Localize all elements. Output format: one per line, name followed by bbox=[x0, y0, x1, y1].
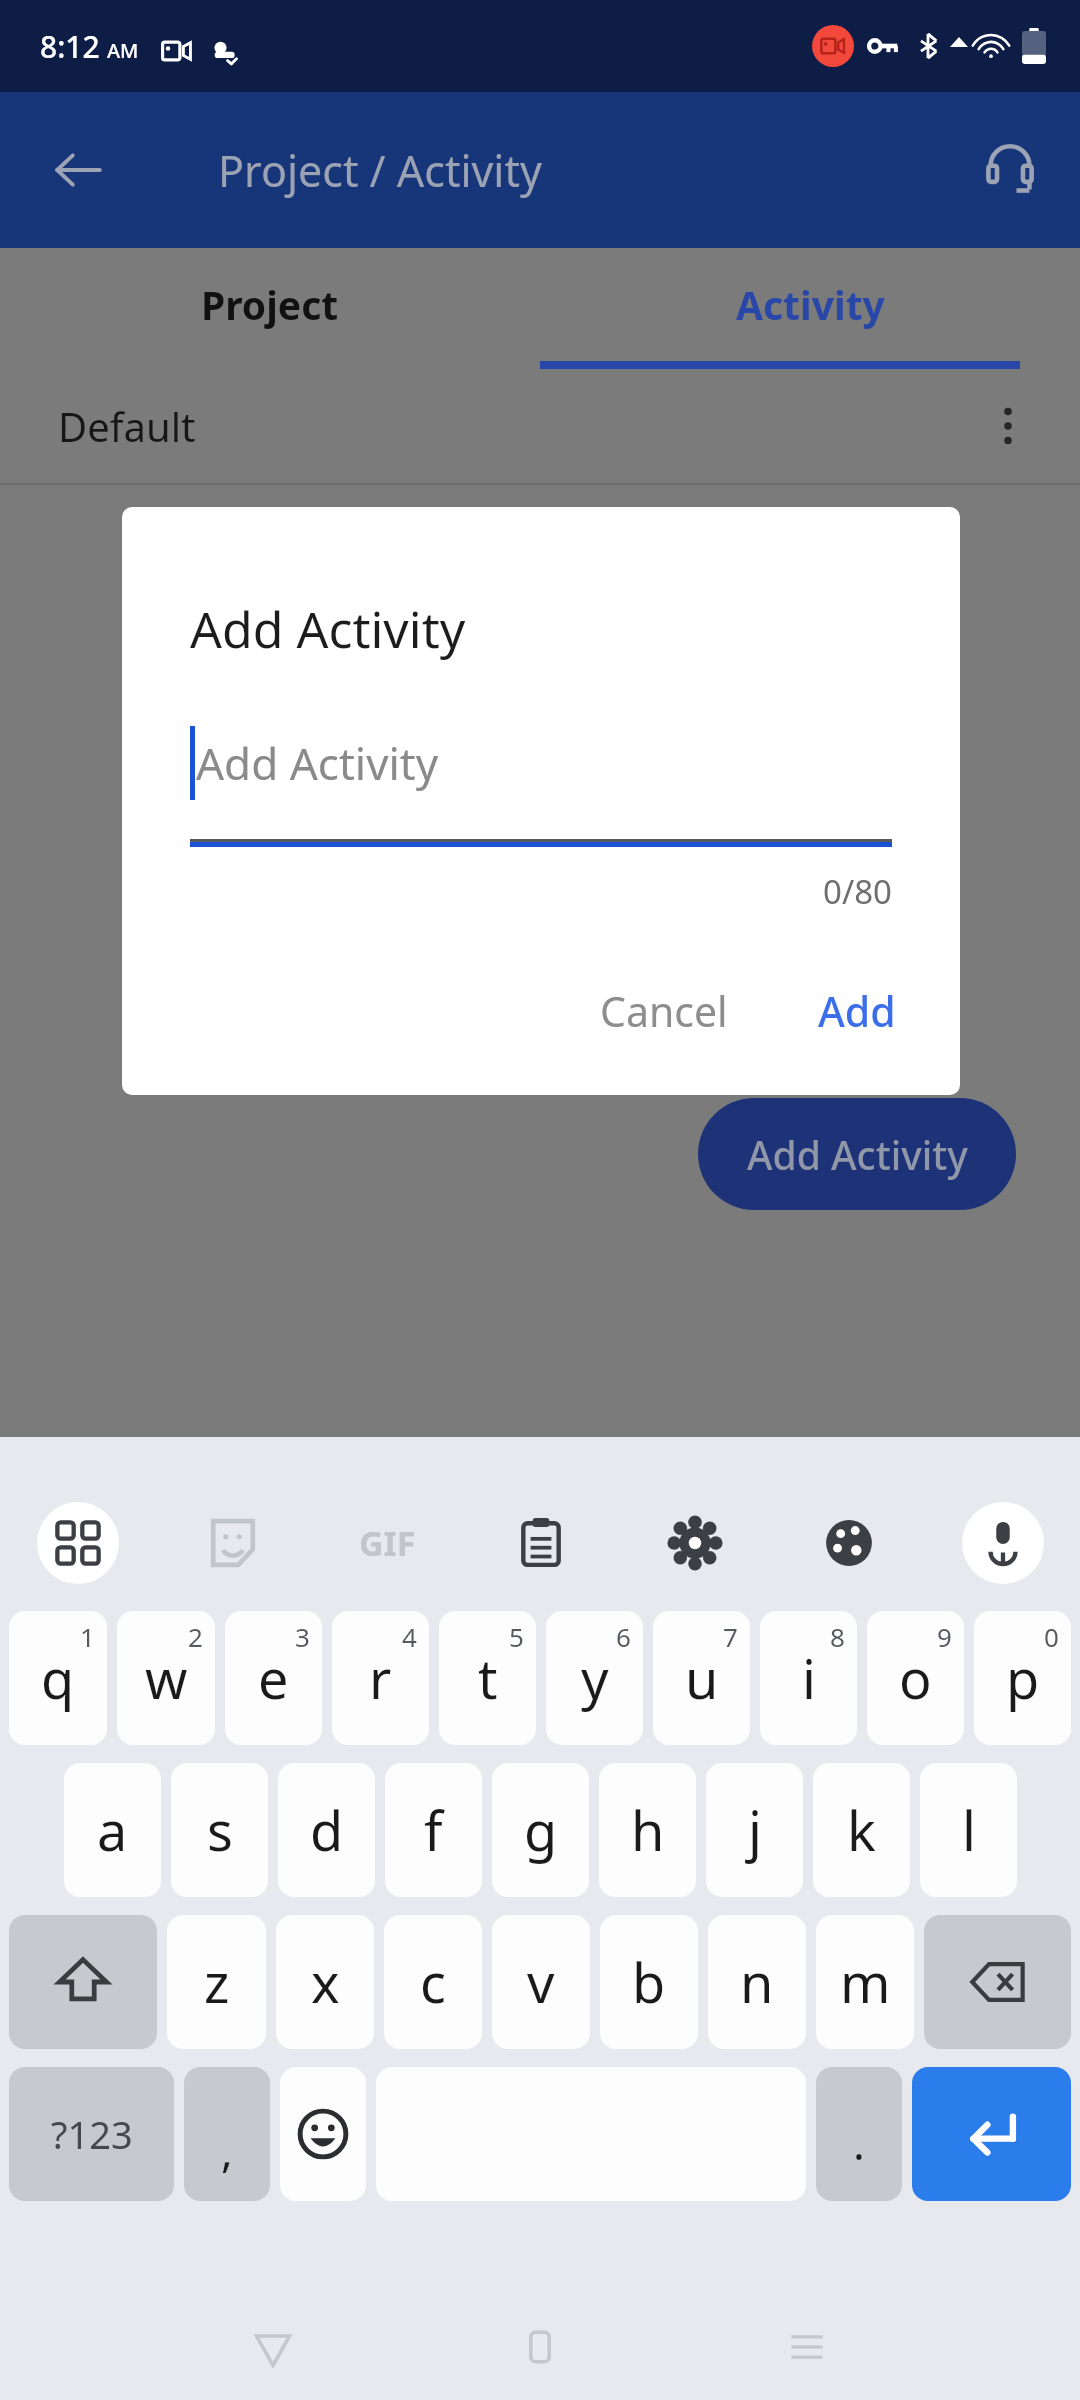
button[interactable]: j bbox=[706, 1763, 803, 1897]
staticText: 0/80 bbox=[190, 869, 892, 914]
button[interactable]: w bbox=[117, 1611, 215, 1745]
button[interactable]: y bbox=[546, 1611, 643, 1745]
staticText: 7 bbox=[723, 1619, 738, 1654]
staticText: w bbox=[145, 1641, 188, 1715]
staticText: j bbox=[748, 1793, 762, 1867]
staticText: Add Activity bbox=[196, 733, 439, 793]
staticText: GIF bbox=[359, 1520, 416, 1566]
button[interactable]: Keyboard modes bbox=[0, 1484, 155, 1602]
button[interactable]: Activity bbox=[540, 248, 1080, 361]
button[interactable]: i bbox=[760, 1611, 857, 1745]
staticText: 4 bbox=[402, 1619, 417, 1654]
button[interactable]: Backspace bbox=[924, 1915, 1071, 2049]
staticText: Default bbox=[58, 399, 196, 453]
staticText: AM bbox=[107, 37, 139, 64]
button[interactable]: h bbox=[599, 1763, 696, 1897]
button[interactable]: Clipboard bbox=[464, 1484, 618, 1602]
staticText: e bbox=[258, 1641, 289, 1715]
button[interactable]: p bbox=[974, 1611, 1071, 1745]
staticText: 3 bbox=[295, 1619, 310, 1654]
staticText: i bbox=[802, 1641, 816, 1715]
staticText: h bbox=[631, 1793, 665, 1867]
staticText: Activity bbox=[736, 278, 885, 331]
staticText: 6 bbox=[616, 1619, 631, 1654]
staticText: b bbox=[632, 1945, 666, 2019]
button[interactable]: More options bbox=[966, 384, 1050, 468]
staticText: n bbox=[740, 1945, 774, 2019]
button[interactable]: Back bbox=[140, 2294, 406, 2400]
button[interactable]: q bbox=[9, 1611, 107, 1745]
staticText: r bbox=[369, 1641, 392, 1715]
button[interactable]: g bbox=[492, 1763, 589, 1897]
button[interactable]: b bbox=[600, 1915, 698, 2049]
button[interactable]: . bbox=[816, 2067, 902, 2201]
staticText: d bbox=[310, 1793, 344, 1867]
button[interactable]: t bbox=[439, 1611, 536, 1745]
staticText: 0 bbox=[1044, 1619, 1059, 1654]
staticText: f bbox=[424, 1793, 443, 1867]
button[interactable]: Add bbox=[796, 967, 918, 1055]
button[interactable]: , bbox=[184, 2067, 270, 2201]
staticText: o bbox=[899, 1641, 932, 1715]
staticText: x bbox=[311, 1945, 340, 2019]
button[interactable]: n bbox=[708, 1915, 806, 2049]
button[interactable]: r bbox=[332, 1611, 429, 1745]
staticText: y bbox=[581, 1641, 609, 1715]
button[interactable]: Shift bbox=[9, 1915, 157, 2049]
staticText: Add Activity bbox=[747, 1128, 968, 1181]
button[interactable]: Settings bbox=[618, 1484, 772, 1602]
button[interactable]: Recents bbox=[673, 2294, 940, 2400]
button[interactable]: Enter bbox=[912, 2067, 1071, 2201]
button[interactable]: v bbox=[492, 1915, 590, 2049]
staticText: v bbox=[527, 1945, 555, 2019]
button[interactable]: Project bbox=[0, 248, 540, 361]
button[interactable]: Stickers bbox=[155, 1484, 310, 1602]
button[interactable]: Back bbox=[40, 132, 116, 208]
staticText: a bbox=[97, 1793, 128, 1867]
button[interactable]: f bbox=[385, 1763, 482, 1897]
button[interactable]: u bbox=[653, 1611, 750, 1745]
staticText: m bbox=[840, 1945, 891, 2019]
button[interactable]: e bbox=[225, 1611, 322, 1745]
button[interactable]: ?123 bbox=[9, 2067, 174, 2201]
staticText: 8:12 bbox=[40, 26, 100, 67]
button[interactable]: Emoji bbox=[280, 2067, 366, 2201]
button[interactable]: x bbox=[276, 1915, 374, 2049]
button[interactable]: o bbox=[867, 1611, 964, 1745]
staticText: 1 bbox=[80, 1619, 95, 1654]
staticText: s bbox=[207, 1793, 233, 1867]
button[interactable]: Cancel bbox=[578, 967, 750, 1055]
staticText: k bbox=[847, 1793, 876, 1867]
button[interactable]: Add Activity bbox=[698, 1098, 1016, 1210]
button[interactable]: Voice input bbox=[926, 1484, 1080, 1602]
staticText: 5 bbox=[509, 1619, 524, 1654]
staticText: u bbox=[685, 1641, 719, 1715]
button[interactable]: d bbox=[278, 1763, 375, 1897]
staticText: Add bbox=[818, 983, 896, 1039]
button[interactable]: l bbox=[920, 1763, 1017, 1897]
staticText: Project / Activity bbox=[218, 141, 542, 200]
staticText: Add Activity bbox=[190, 595, 466, 663]
button[interactable]: a bbox=[64, 1763, 161, 1897]
staticText: 9 bbox=[937, 1619, 952, 1654]
button[interactable]: z bbox=[167, 1915, 266, 2049]
button[interactable]: k bbox=[813, 1763, 910, 1897]
staticText: Cancel bbox=[600, 983, 728, 1039]
button[interactable]: Themes bbox=[772, 1484, 926, 1602]
staticText: ?123 bbox=[51, 2108, 133, 2160]
button[interactable]: s bbox=[171, 1763, 268, 1897]
staticText: g bbox=[524, 1793, 558, 1867]
staticText: p bbox=[1006, 1641, 1040, 1715]
staticText: c bbox=[420, 1945, 446, 2019]
button[interactable]: m bbox=[816, 1915, 914, 2049]
staticText: . bbox=[853, 2113, 865, 2173]
button[interactable]: c bbox=[384, 1915, 482, 2049]
staticText: Project bbox=[201, 278, 339, 331]
staticText: 8 bbox=[830, 1619, 845, 1654]
button[interactable]: GIF bbox=[310, 1484, 464, 1602]
staticText: t bbox=[478, 1641, 498, 1715]
button[interactable]: Support bbox=[968, 128, 1052, 212]
staticText: z bbox=[204, 1945, 230, 2019]
button[interactable]: Home bbox=[406, 2294, 673, 2400]
